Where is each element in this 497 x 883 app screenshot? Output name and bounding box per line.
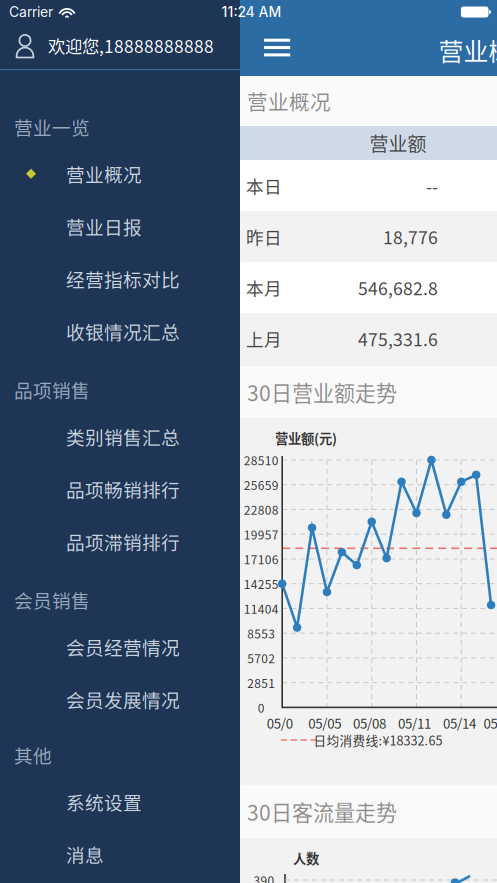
- staticText: 475,331.6: [358, 326, 438, 351]
- staticText: 人数: [293, 848, 319, 868]
- staticText: 546,682.8: [358, 275, 438, 300]
- staticText: 营业概况: [438, 32, 497, 68]
- staticText: 会员销售: [14, 586, 90, 613]
- staticText: 11:24 AM: [221, 3, 281, 20]
- staticText: 0: [258, 699, 265, 716]
- staticText: 会员经营情况: [66, 633, 180, 660]
- staticText: 05/: [483, 713, 497, 733]
- staticText: 本日: [246, 173, 282, 198]
- staticText: 本月: [246, 275, 282, 300]
- staticText: 390: [253, 871, 274, 883]
- staticText: 品项畅销排行: [66, 476, 180, 503]
- staticText: 11404: [244, 600, 279, 617]
- staticText: 05/14: [443, 713, 476, 733]
- staticText: 日均消费线:¥18332.65: [313, 731, 442, 749]
- staticText: 欢迎您,18888888888: [48, 33, 214, 58]
- staticText: 营业一览: [14, 113, 90, 140]
- staticText: 营业额: [369, 129, 426, 157]
- button[interactable]: 系统设置: [0, 776, 240, 828]
- staticText: 8553: [247, 624, 275, 642]
- button[interactable]: Menu: [246, 26, 308, 72]
- button[interactable]: 营业日报: [0, 200, 240, 252]
- staticText: 品项滞销排行: [66, 528, 180, 555]
- staticText: 营业日报: [66, 213, 142, 240]
- staticText: 经营指标对比: [66, 265, 180, 292]
- staticText: 品项销售: [14, 376, 90, 403]
- button[interactable]: 品项畅销排行: [0, 463, 240, 515]
- staticText: 19957: [244, 525, 279, 543]
- staticText: 2851: [247, 674, 275, 691]
- staticText: 营业概况: [247, 86, 331, 116]
- staticText: Carrier: [9, 3, 53, 20]
- button[interactable]: 收银情况汇总: [0, 305, 240, 357]
- staticText: 营业概况: [66, 160, 142, 187]
- staticText: 其他: [14, 741, 52, 768]
- staticText: 14255: [244, 575, 279, 592]
- staticText: 05/0: [267, 713, 293, 733]
- button[interactable]: 经营指标对比: [0, 252, 240, 305]
- button[interactable]: 会员经营情况: [0, 620, 240, 673]
- staticText: 会员发展情况: [66, 686, 180, 713]
- staticText: 昨日: [246, 224, 282, 249]
- staticText: 25659: [244, 476, 279, 493]
- staticText: 30日客流量走势: [247, 796, 397, 827]
- button[interactable]: 会员发展情况: [0, 673, 240, 725]
- staticText: 05/08: [353, 713, 386, 733]
- staticText: 05/11: [398, 713, 431, 733]
- staticText: 17106: [244, 550, 279, 568]
- staticText: 05/05: [308, 713, 341, 733]
- staticText: 收银情况汇总: [66, 318, 180, 345]
- staticText: --: [426, 173, 438, 198]
- button[interactable]: 营业概况: [0, 147, 240, 200]
- staticText: 28510: [244, 451, 279, 469]
- staticText: 30日营业额走势: [247, 377, 397, 407]
- staticText: 类别销售汇总: [66, 423, 180, 450]
- staticText: 22808: [244, 501, 279, 518]
- button[interactable]: 欢迎您,18888888888: [0, 22, 240, 69]
- button[interactable]: 消息: [0, 828, 240, 881]
- staticText: 上月: [246, 326, 282, 351]
- button[interactable]: 类别销售汇总: [0, 410, 240, 463]
- staticText: 系统设置: [66, 788, 142, 815]
- staticText: 5702: [247, 649, 275, 667]
- button[interactable]: 品项滞销排行: [0, 515, 240, 568]
- staticText: 消息: [66, 841, 104, 868]
- staticText: 营业额(元): [275, 428, 337, 448]
- staticText: 18,776: [383, 224, 438, 249]
